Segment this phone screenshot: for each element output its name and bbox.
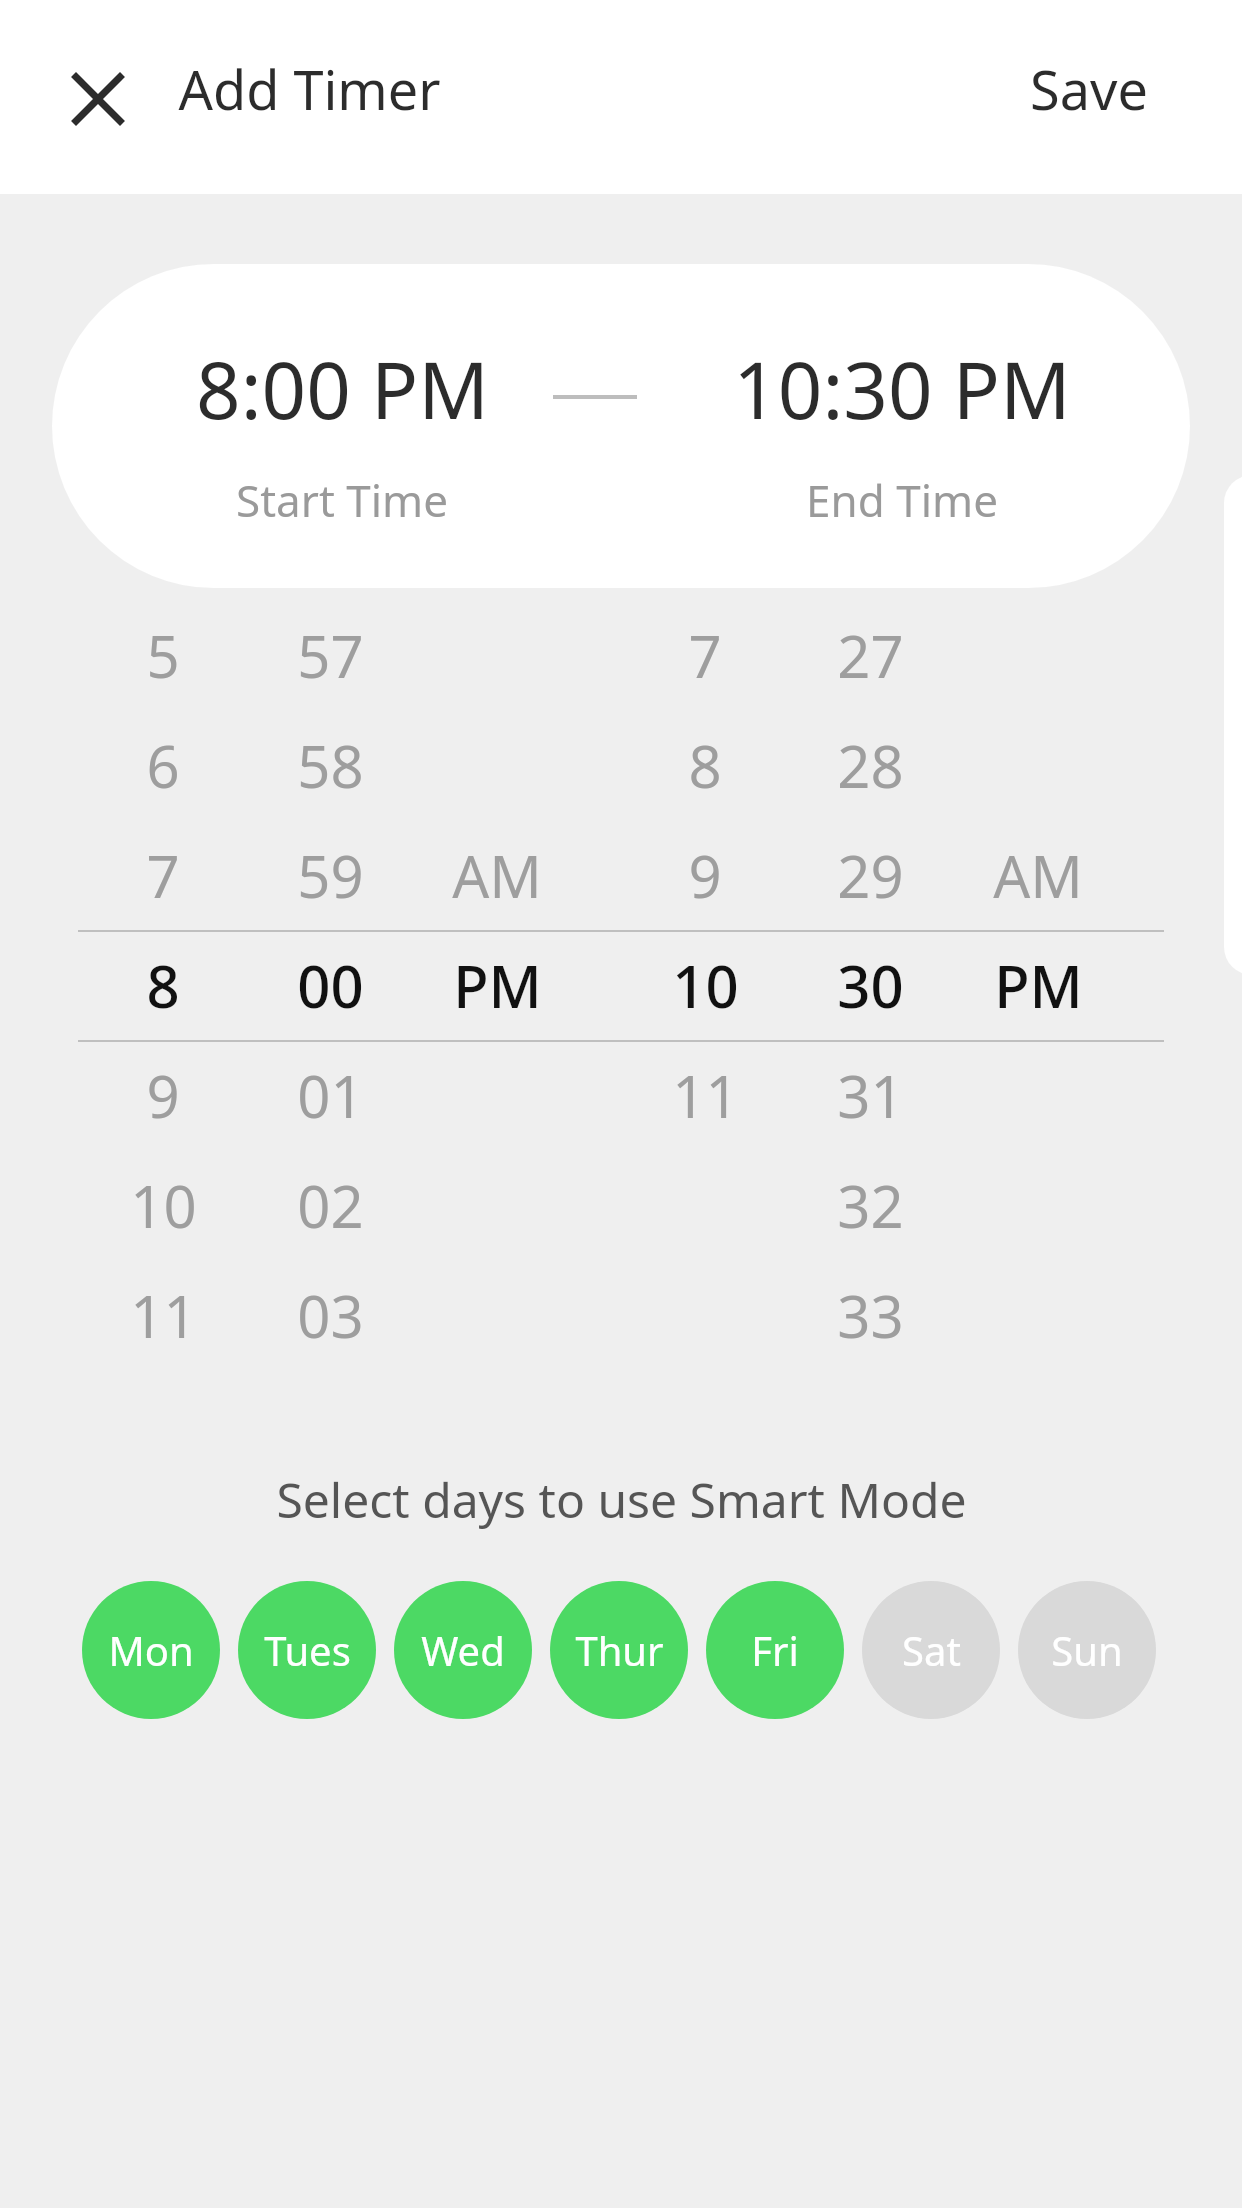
button[interactable]: Sun [1018,1581,1156,1719]
staticText: 03 [297,1276,364,1355]
staticText: AM [452,836,542,915]
button[interactable]: Save [1030,52,1148,126]
staticText: 27 [837,616,904,695]
staticText: 32 [837,1166,904,1245]
staticText: PM [994,946,1083,1025]
staticText: 7 [146,836,180,915]
staticText: 11 [130,1276,197,1355]
button[interactable]: Thur [550,1581,688,1719]
staticText: 28 [837,726,904,805]
button[interactable]: Wed [394,1581,532,1719]
staticText: 5 [146,616,180,695]
staticText: End Time [806,470,998,530]
button[interactable]: Fri [706,1581,844,1719]
staticText: Mon [108,1623,194,1677]
button[interactable]: Sat [862,1581,1000,1719]
staticText: 30 [837,946,904,1025]
button[interactable]: Picker column 1 [79,595,247,1365]
staticText: 9 [146,1056,180,1135]
button[interactable]: Picker column 5 [786,595,954,1365]
staticText: 59 [297,836,364,915]
staticText: 8:00 PM [196,336,489,442]
staticText: 29 [837,836,904,915]
staticText: 33 [837,1276,904,1355]
staticText: Thur [575,1623,664,1677]
staticText: 8 [688,726,722,805]
button[interactable]: Mon [82,1581,220,1719]
staticText: 00 [297,946,364,1025]
staticText: 10:30 PM [733,336,1071,442]
staticText: Add Timer [178,52,441,126]
staticText: Start Time [236,470,448,530]
button[interactable]: Picker column 3 [413,595,581,1365]
staticText: 9 [688,836,722,915]
staticText: PM [453,946,542,1025]
staticText: 02 [297,1166,364,1245]
staticText: Sun [1051,1623,1123,1677]
staticText: AM [993,836,1083,915]
button[interactable]: Picker column 2 [246,595,414,1365]
button[interactable]: Add Timer [178,52,441,126]
staticText: 01 [297,1056,364,1135]
staticText: 31 [837,1056,904,1135]
staticText: Fri [751,1623,799,1677]
button[interactable]: 8:00 PM [92,264,592,588]
button[interactable]: Tues [238,1581,376,1719]
staticText: 10 [672,946,739,1025]
staticText: 58 [297,726,364,805]
staticText: 10 [130,1166,197,1245]
staticText: 6 [146,726,180,805]
staticText: Tues [264,1623,351,1677]
staticText: 8 [146,946,180,1025]
staticText: 7 [688,616,722,695]
button[interactable]: Picker column 6 [954,595,1122,1365]
staticText: 11 [672,1056,739,1135]
staticText: Save [1030,52,1148,126]
staticText: Select days to use Smart Mode [276,1467,967,1532]
button[interactable]: Close [58,59,138,139]
button[interactable]: 10:30 PM [652,264,1152,588]
staticText: Sat [902,1623,961,1677]
staticText: Wed [421,1623,505,1677]
button[interactable]: Picker column 4 [621,595,789,1365]
staticText: 57 [297,616,364,695]
